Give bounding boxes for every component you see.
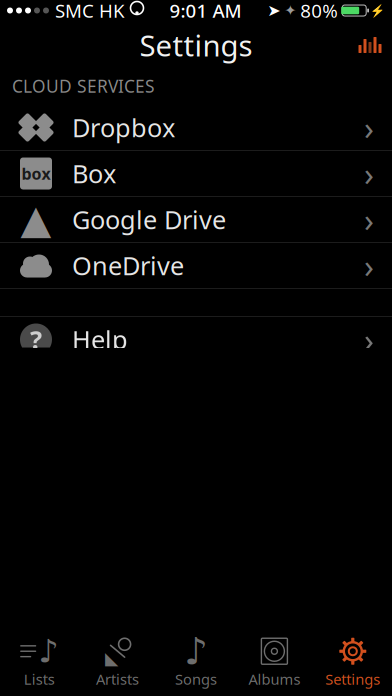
staticText: › (364, 244, 374, 287)
staticText: CLOUD SERVICES (12, 74, 155, 97)
staticText: Dropbox (72, 111, 175, 144)
staticText: ♪ (184, 630, 208, 672)
staticText: › (364, 152, 374, 195)
staticText: Artists (96, 669, 139, 689)
button[interactable]: Albums (235, 628, 314, 696)
staticText: box (21, 163, 50, 184)
staticText: ⚡ (370, 4, 385, 17)
staticText: Lists (24, 669, 55, 689)
staticText: › (364, 106, 374, 149)
staticText: Help (72, 323, 128, 356)
staticText: 80% (300, 0, 338, 23)
button[interactable]: ♪ (157, 628, 235, 696)
staticText: › (364, 198, 374, 241)
staticText: › (364, 318, 374, 361)
staticText: ✦ (284, 2, 296, 19)
staticText: Settings (139, 25, 252, 64)
staticText: Google Drive (72, 203, 226, 236)
staticText: ➤ (267, 1, 280, 20)
button[interactable]: OneDrive (0, 243, 392, 288)
staticText: Box (72, 157, 116, 190)
staticText: OneDrive (72, 249, 184, 282)
staticText: 9:01 AM (170, 0, 242, 23)
staticText: ♪ (38, 633, 58, 669)
staticText: Settings (325, 669, 380, 689)
staticText: ▲ (20, 197, 51, 242)
button[interactable]: box (0, 151, 392, 196)
staticText: ? (30, 323, 42, 356)
button[interactable]: Dropbox (0, 105, 392, 150)
staticText: Albums (248, 669, 300, 689)
button[interactable]: ◣ (78, 628, 157, 696)
staticText: ◣ (105, 648, 118, 668)
staticText: Songs (175, 669, 217, 689)
button[interactable]: Equalizer (348, 23, 392, 67)
button[interactable]: ? (0, 317, 392, 362)
button[interactable]: ♪ (0, 628, 78, 696)
staticText: SMC HK (55, 0, 125, 23)
button[interactable]: Settings (314, 628, 392, 696)
button[interactable]: ▲ (0, 197, 392, 242)
